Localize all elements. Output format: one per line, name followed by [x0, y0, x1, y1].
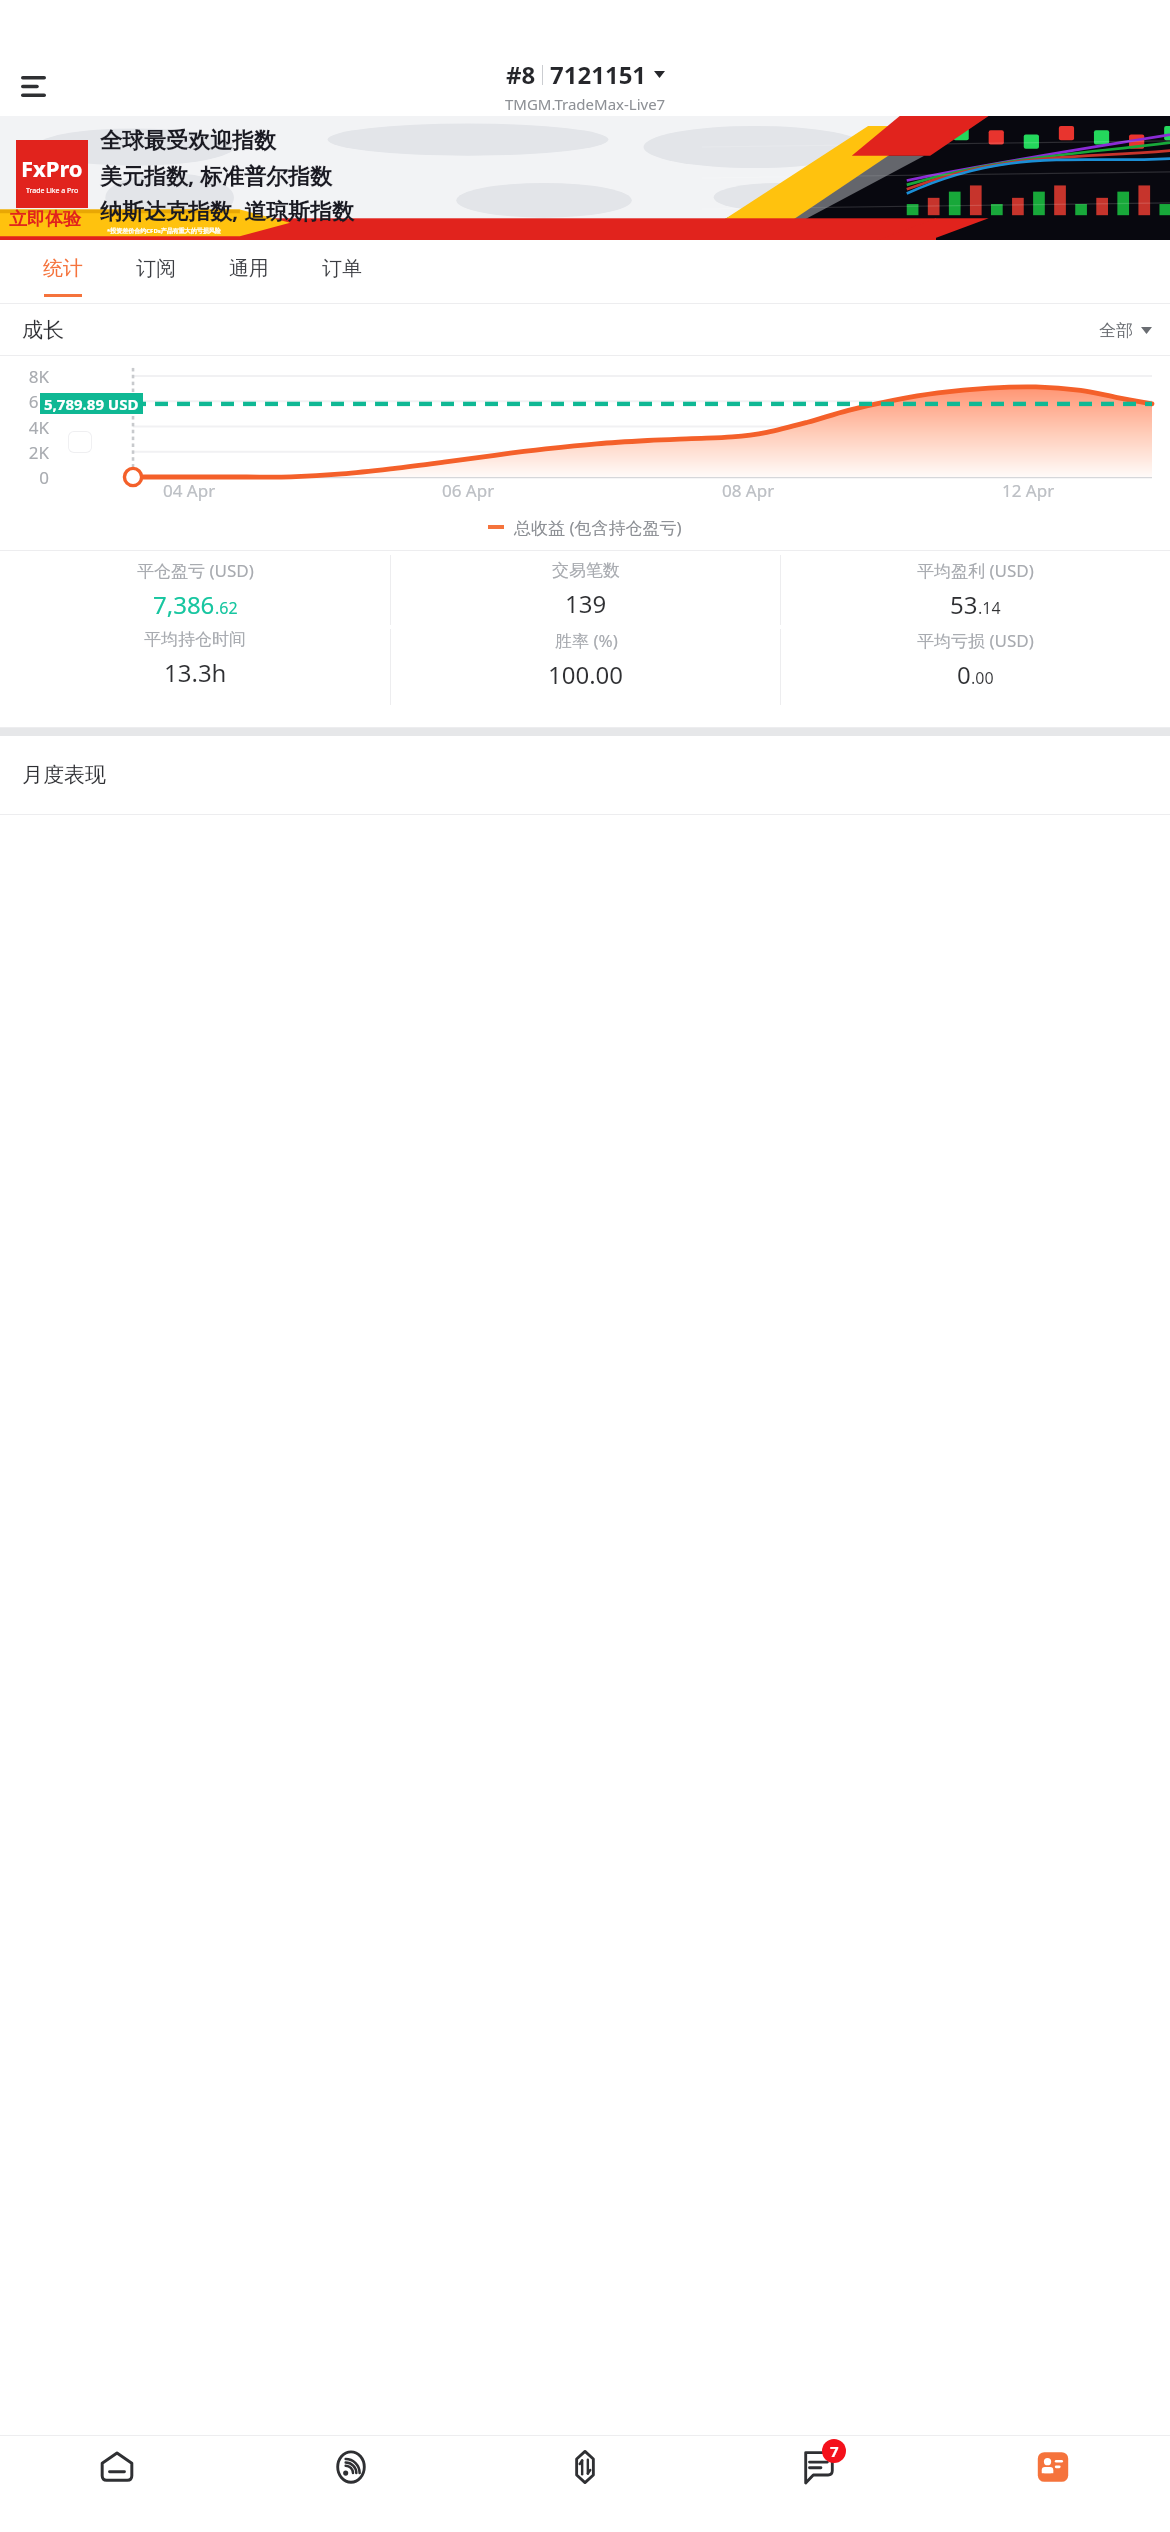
staticText: 8K [12, 365, 49, 388]
staticText: 美元指数, 标准普尔指数 [100, 160, 332, 190]
staticText: 通用 [229, 256, 269, 281]
staticText: 53 [950, 588, 978, 621]
staticText: 总收益 (包含持仓盈亏) [514, 516, 682, 539]
staticText: 平仓盈亏 (USD) [137, 559, 254, 582]
button[interactable]: 订阅 [109, 240, 202, 304]
staticText: 交易笔数 [552, 560, 620, 581]
staticText: 7121151 [550, 58, 647, 91]
staticText: *投资差价合约CFDs产品有重大的亏损风险 [107, 227, 221, 235]
staticText: 订单 [322, 256, 362, 281]
staticText: 平均亏损 (USD) [917, 629, 1034, 652]
staticText: 纳斯达克指数, 道琼斯指数 [100, 195, 354, 225]
staticText: 4K [12, 416, 49, 439]
button[interactable]: Chat [702, 2436, 936, 2532]
staticText: 06 Apr [442, 479, 495, 502]
button[interactable]: Signals [234, 2436, 468, 2532]
button[interactable]: 平仓盈亏 (USD) [0, 551, 390, 629]
staticText: .14 [978, 597, 1001, 619]
staticText: FxPro [21, 153, 83, 183]
staticText: 全部 [1099, 320, 1133, 341]
staticText: 7,386 [153, 588, 215, 621]
staticText: 6K [12, 390, 49, 413]
button[interactable]: 胜率 (%) [391, 629, 780, 727]
staticText: 100.00 [548, 658, 624, 691]
staticText: 0 [12, 466, 49, 489]
button[interactable]: 平均亏损 (USD) [781, 629, 1170, 727]
staticText: 2K [12, 441, 49, 464]
button[interactable]: 平均持仓时间 [0, 629, 390, 727]
staticText: 04 Apr [163, 479, 216, 502]
button[interactable]: 订单 [295, 240, 388, 304]
button[interactable]: Account [936, 2436, 1170, 2532]
button[interactable]: FxPro advertisement [0, 116, 1170, 240]
button[interactable]: Trade [468, 2436, 702, 2532]
button[interactable]: Menu [6, 59, 60, 113]
button[interactable]: 平均盈利 (USD) [781, 551, 1170, 629]
staticText: 12 Apr [1002, 479, 1055, 502]
staticText: 立即体验 [9, 208, 81, 231]
staticText: 订阅 [136, 256, 176, 281]
button[interactable]: 全部 [1099, 320, 1152, 341]
staticText: 月度表现 [22, 762, 106, 788]
staticText: 胜率 (%) [555, 629, 618, 652]
staticText: Trade Like a Pro [26, 186, 79, 196]
button[interactable]: 通用 [202, 240, 295, 304]
staticText: .00 [971, 667, 994, 689]
staticText: 统计 [43, 256, 83, 281]
staticText: #8 [506, 58, 536, 91]
staticText: 139 [565, 587, 607, 620]
staticText: 5,789.89 USD [44, 394, 139, 414]
staticText: .62 [215, 597, 238, 619]
staticText: 平均持仓时间 [144, 629, 246, 650]
staticText: TMGM.TradeMax-Live7 [505, 94, 666, 114]
staticText: 13.3h [164, 656, 227, 689]
button[interactable]: Home [0, 2436, 234, 2532]
button[interactable]: 统计 [16, 240, 109, 304]
staticText: 成长 [22, 317, 64, 343]
staticText: 7 [830, 2441, 839, 2461]
staticText: 平均盈利 (USD) [917, 559, 1034, 582]
staticText: 08 Apr [722, 479, 775, 502]
staticText: 0 [957, 658, 971, 691]
staticText: 全球最受欢迎指数 [100, 127, 276, 155]
button[interactable]: 月度表现 [0, 736, 1170, 814]
button[interactable]: 交易笔数 [391, 551, 780, 629]
